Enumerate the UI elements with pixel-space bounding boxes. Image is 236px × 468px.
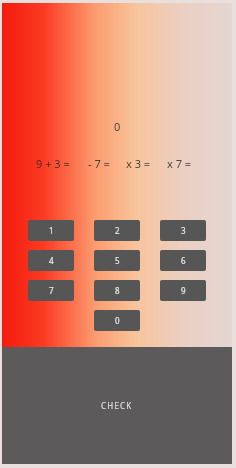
button[interactable]: 4 (28, 250, 74, 271)
button[interactable]: 3 (160, 220, 206, 241)
button[interactable]: 8 (94, 280, 140, 301)
staticText: 0 (115, 315, 120, 326)
staticText: 5 (115, 255, 120, 266)
staticText: 3 (181, 225, 186, 236)
button[interactable]: 5 (94, 250, 140, 271)
button[interactable]: 6 (160, 250, 206, 271)
staticText: 4 (49, 255, 54, 266)
staticText: 7 (49, 285, 54, 296)
staticText: - 7 = (88, 156, 110, 171)
staticText: 0 (114, 119, 121, 134)
button[interactable]: 0 (94, 310, 140, 331)
staticText: 9 + 3 = (36, 156, 70, 171)
staticText: 1 (49, 225, 54, 236)
staticText: x 7 = (167, 156, 192, 171)
staticText: 8 (115, 285, 120, 296)
button[interactable]: 2 (94, 220, 140, 241)
staticText: CHECK (101, 400, 133, 411)
button[interactable]: CHECK (2, 347, 232, 464)
staticText: 2 (115, 225, 120, 236)
button[interactable]: 1 (28, 220, 74, 241)
button[interactable]: 7 (28, 280, 74, 301)
button[interactable]: 9 (160, 280, 206, 301)
staticText: x 3 = (126, 156, 151, 171)
staticText: 6 (181, 255, 186, 266)
staticText: 9 (181, 285, 186, 296)
